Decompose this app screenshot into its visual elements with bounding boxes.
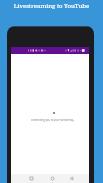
button[interactable]: Home bbox=[50, 174, 54, 183]
button[interactable]: Recents bbox=[29, 174, 33, 183]
staticText: Livestreaming to YouTube bbox=[0, 1, 103, 9]
button[interactable]: Back bbox=[69, 174, 73, 183]
staticText: connecting you to your streaming... bbox=[14, 118, 92, 122]
